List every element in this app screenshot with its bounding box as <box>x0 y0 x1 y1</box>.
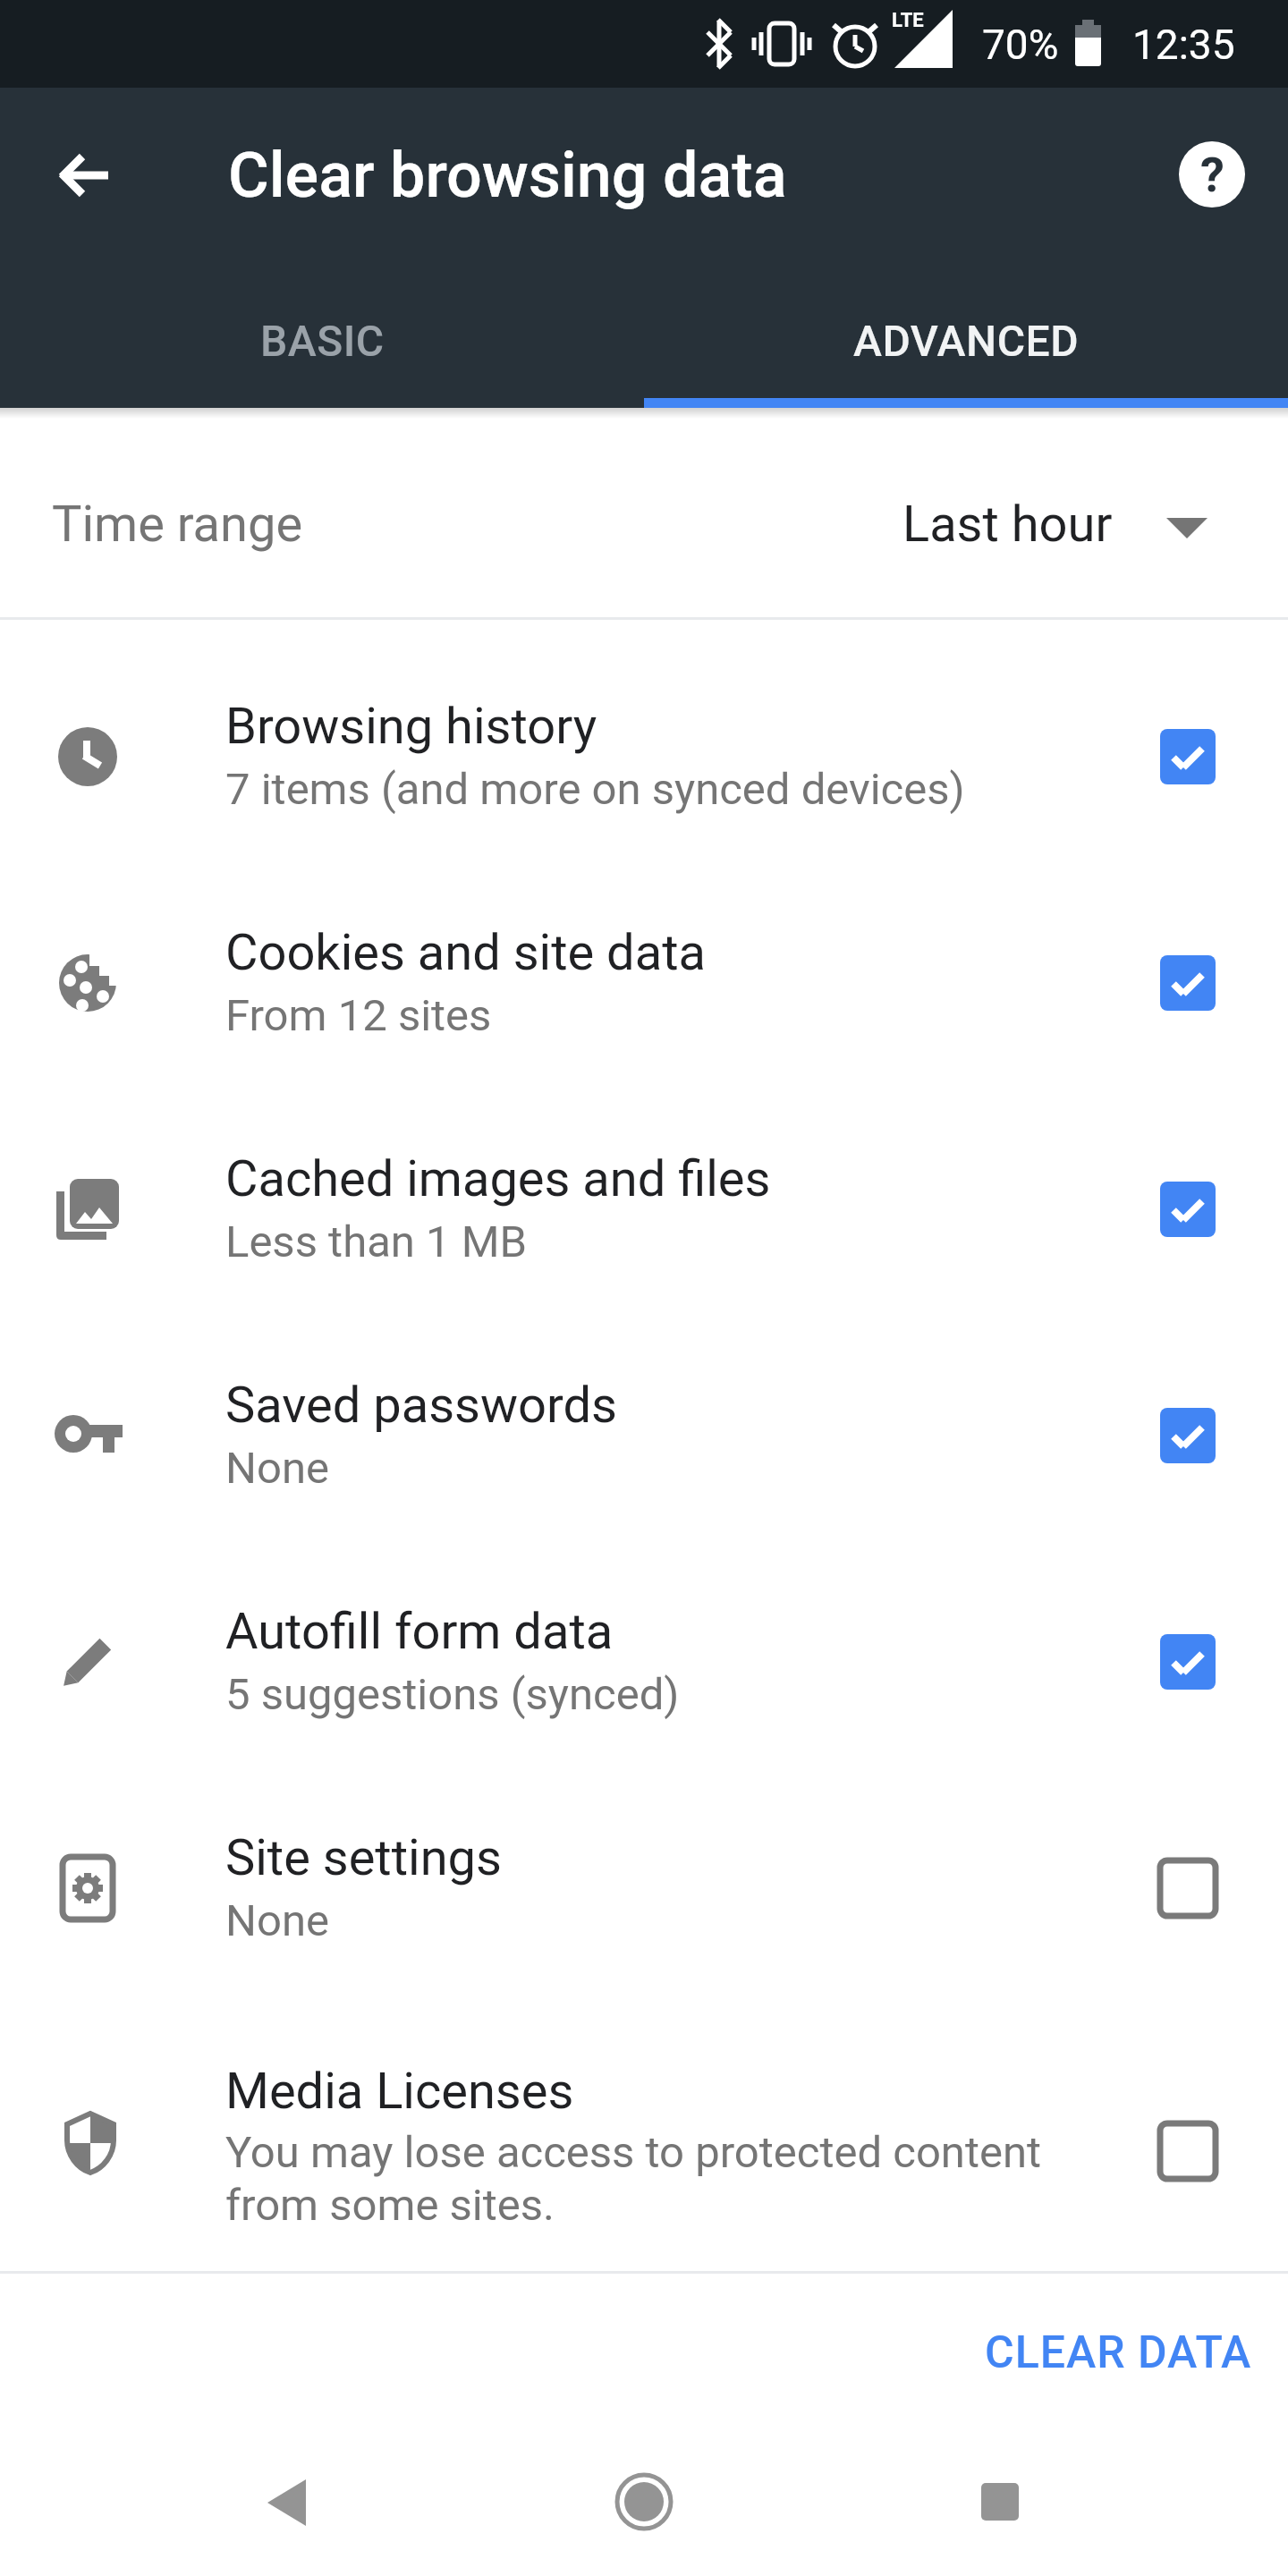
staticText: Clear browsing data <box>228 139 787 212</box>
staticText: Cached images and files <box>225 1149 771 1208</box>
staticText: LTE <box>892 9 924 32</box>
staticText: None <box>225 1895 329 1946</box>
button[interactable] <box>0 2009 1288 2271</box>
button[interactable] <box>23 113 148 238</box>
staticText: 5 suggestions (synced) <box>225 1669 680 1720</box>
button[interactable]: BASIC <box>0 274 644 408</box>
staticText: You may lose access to protected content… <box>225 2127 1042 2231</box>
button[interactable] <box>0 870 1288 1097</box>
staticText: 70% <box>982 21 1059 69</box>
staticText: Last hour <box>902 495 1113 554</box>
staticText: 12:35 <box>1132 21 1235 69</box>
staticText: 7 items (and more on synced devices) <box>225 764 965 815</box>
staticText: None <box>225 1443 329 1494</box>
button[interactable] <box>0 644 1288 870</box>
staticText: Browsing history <box>225 697 597 756</box>
staticText: From 12 sites <box>225 990 492 1041</box>
button[interactable] <box>599 2457 689 2546</box>
button[interactable] <box>241 2458 331 2547</box>
staticText: Media Licenses <box>225 2062 574 2121</box>
button[interactable]: ADVANCED <box>644 274 1288 408</box>
staticText: BASIC <box>260 316 385 366</box>
staticText: Site settings <box>225 1828 502 1887</box>
button[interactable]: ? <box>1169 131 1255 217</box>
staticText: CLEAR DATA <box>985 2326 1252 2379</box>
button[interactable] <box>0 1323 1288 1549</box>
staticText: Less than 1 MB <box>225 1216 527 1267</box>
button[interactable] <box>0 1097 1288 1323</box>
staticText: Saved passwords <box>225 1376 617 1435</box>
staticText: ADVANCED <box>853 316 1079 366</box>
staticText: Time range <box>52 495 303 554</box>
button[interactable] <box>955 2457 1045 2546</box>
button[interactable]: CLEAR DATA <box>930 2301 1252 2404</box>
button[interactable] <box>0 420 1288 617</box>
staticText: Cookies and site data <box>225 923 706 982</box>
staticText: ? <box>1200 147 1224 203</box>
staticText: Autofill form data <box>225 1602 614 1661</box>
button[interactable] <box>0 1775 1288 2002</box>
button[interactable] <box>0 1549 1288 1775</box>
